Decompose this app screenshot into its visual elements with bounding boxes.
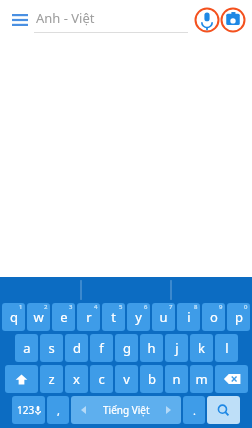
- button[interactable]: q: [2, 303, 25, 331]
- button[interactable]: k: [190, 334, 213, 362]
- staticText: a: [23, 339, 31, 357]
- staticText: b: [148, 370, 156, 388]
- button[interactable]: l: [215, 334, 238, 362]
- button[interactable]: Anh - Việt: [34, 7, 188, 33]
- button[interactable]: o: [202, 303, 225, 331]
- staticText: 2: [44, 303, 48, 311]
- staticText: 3: [69, 303, 73, 311]
- button[interactable]: h: [140, 334, 163, 362]
- button[interactable]: r: [77, 303, 100, 331]
- staticText: s: [48, 339, 55, 357]
- staticText: q: [10, 308, 18, 326]
- button[interactable]: j: [165, 334, 188, 362]
- staticText: g: [123, 339, 131, 357]
- staticText: n: [172, 370, 181, 388]
- button[interactable]: v: [115, 365, 138, 393]
- staticText: 5: [119, 303, 123, 311]
- staticText: f: [99, 339, 104, 357]
- staticText: z: [48, 370, 55, 388]
- staticText: p: [235, 308, 243, 326]
- staticText: 0: [244, 303, 248, 311]
- staticText: 7: [169, 303, 173, 311]
- staticText: d: [73, 339, 81, 357]
- button[interactable]: e: [52, 303, 75, 331]
- button[interactable]: .: [183, 396, 205, 424]
- button[interactable]: c: [90, 365, 113, 393]
- staticText: u: [159, 308, 168, 326]
- staticText: 4: [94, 303, 98, 311]
- staticText: y: [135, 308, 142, 326]
- button[interactable]: f: [90, 334, 113, 362]
- staticText: 8: [194, 303, 198, 311]
- button[interactable]: d: [65, 334, 88, 362]
- button[interactable]: Camera translate: [220, 7, 246, 33]
- staticText: r: [86, 308, 92, 326]
- button[interactable]: p: [227, 303, 250, 331]
- button[interactable]: [5, 365, 38, 393]
- button[interactable]: Voice input: [194, 7, 220, 33]
- staticText: w: [33, 308, 44, 326]
- staticText: t: [111, 308, 116, 326]
- staticText: o: [210, 308, 218, 326]
- staticText: 1: [19, 303, 23, 311]
- button[interactable]: i: [177, 303, 200, 331]
- button[interactable]: Numbers and voice: [12, 396, 45, 424]
- button[interactable]: ,: [47, 396, 69, 424]
- button[interactable]: [215, 365, 248, 393]
- staticText: Anh - Việt: [36, 9, 95, 27]
- button[interactable]: g: [115, 334, 138, 362]
- button[interactable]: b: [140, 365, 163, 393]
- staticText: 6: [144, 303, 148, 311]
- staticText: 123: [17, 403, 35, 417]
- button[interactable]: m: [190, 365, 213, 393]
- staticText: Tiếng Việt: [103, 403, 150, 417]
- button[interactable]: y: [127, 303, 150, 331]
- staticText: k: [198, 339, 205, 357]
- button[interactable]: a: [15, 334, 38, 362]
- staticText: h: [147, 339, 156, 357]
- staticText: x: [73, 370, 80, 388]
- button[interactable]: s: [40, 334, 63, 362]
- staticText: 9: [219, 303, 223, 311]
- button[interactable]: Menu: [6, 6, 34, 34]
- button[interactable]: n: [165, 365, 188, 393]
- staticText: ,: [57, 403, 60, 418]
- staticText: i: [187, 308, 191, 326]
- staticText: c: [98, 370, 105, 388]
- button[interactable]: Search: [207, 396, 240, 424]
- staticText: e: [60, 308, 68, 326]
- staticText: m: [195, 370, 208, 388]
- button[interactable]: Tiếng Việt: [71, 396, 181, 424]
- staticText: v: [123, 370, 130, 388]
- staticText: j: [175, 339, 179, 357]
- staticText: .: [193, 403, 196, 418]
- staticText: l: [225, 339, 229, 357]
- button[interactable]: u: [152, 303, 175, 331]
- button[interactable]: z: [40, 365, 63, 393]
- button[interactable]: w: [27, 303, 50, 331]
- button[interactable]: t: [102, 303, 125, 331]
- button[interactable]: x: [65, 365, 88, 393]
